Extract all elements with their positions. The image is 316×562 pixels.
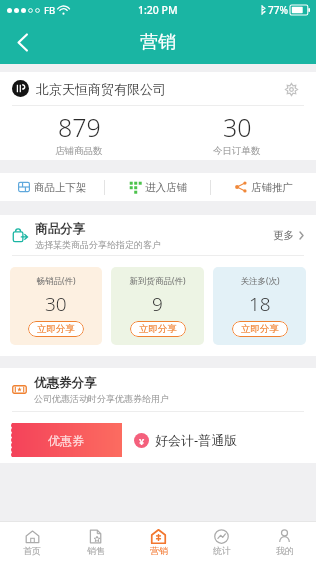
staticText: 统计 bbox=[213, 545, 231, 556]
staticText: 营销 bbox=[150, 545, 168, 556]
button[interactable]: Settings bbox=[278, 76, 304, 102]
button[interactable]: 新到货商品(件) bbox=[111, 267, 204, 345]
button[interactable]: 店铺推广 bbox=[211, 173, 316, 201]
staticText: 30 bbox=[45, 291, 67, 317]
staticText: 北京天恒商贸有限公司 bbox=[36, 81, 166, 97]
button[interactable]: 进入店铺 bbox=[105, 173, 210, 201]
button[interactable]: 30 bbox=[158, 106, 316, 160]
staticText: 879 bbox=[58, 110, 101, 144]
staticText: 30 bbox=[223, 110, 252, 144]
staticText: FB bbox=[44, 4, 56, 17]
button[interactable]: 我的 bbox=[253, 522, 316, 562]
staticText: 立即分享 bbox=[37, 323, 75, 335]
button[interactable]: 立即分享 bbox=[28, 321, 84, 337]
staticText: 销售 bbox=[87, 545, 105, 556]
button[interactable]: 879 bbox=[0, 106, 158, 160]
button[interactable]: Back bbox=[0, 20, 44, 64]
staticText: 我的 bbox=[276, 545, 294, 556]
button[interactable]: 关注多(次) bbox=[213, 267, 306, 345]
staticText: 畅销品(件) bbox=[36, 275, 76, 287]
staticText: 进入店铺 bbox=[145, 181, 187, 194]
staticText: 选择某类商品分享给指定的客户 bbox=[35, 239, 161, 250]
staticText: ¥ bbox=[139, 435, 145, 447]
button[interactable]: 立即分享 bbox=[232, 321, 288, 337]
staticText: 公司优惠活动时分享优惠券给用户 bbox=[34, 393, 169, 404]
staticText: 店铺商品数 bbox=[55, 145, 103, 157]
button[interactable]: 销售 bbox=[64, 522, 127, 562]
staticText: 优惠券 bbox=[48, 433, 84, 448]
staticText: 好会计-普通版 bbox=[155, 431, 238, 449]
staticText: 9 bbox=[152, 291, 163, 317]
staticText: 立即分享 bbox=[241, 323, 279, 335]
button[interactable]: 营销 bbox=[127, 522, 190, 562]
staticText: 首页 bbox=[23, 545, 41, 556]
staticText: 优惠券分享 bbox=[34, 375, 97, 391]
staticText: 店铺推广 bbox=[251, 181, 293, 194]
button[interactable]: 优惠券分享 bbox=[0, 368, 316, 411]
staticText: 商品分享 bbox=[35, 221, 85, 237]
button[interactable]: 畅销品(件) bbox=[10, 267, 102, 345]
button[interactable]: 商品分享 bbox=[0, 215, 316, 255]
button[interactable]: 优惠券 bbox=[10, 423, 306, 457]
staticText: 今日订单数 bbox=[213, 145, 261, 157]
staticText: 商品上下架 bbox=[34, 181, 87, 194]
staticText: 关注多(次) bbox=[240, 275, 280, 287]
staticText: 新到货商品(件) bbox=[129, 275, 186, 287]
staticText: 77% bbox=[268, 3, 288, 17]
button[interactable]: 立即分享 bbox=[130, 321, 186, 337]
staticText: 营销 bbox=[140, 31, 176, 54]
staticText: 18 bbox=[249, 291, 271, 317]
staticText: 1:20 PM bbox=[138, 3, 178, 17]
button[interactable]: 统计 bbox=[190, 522, 253, 562]
button[interactable]: 商品上下架 bbox=[0, 173, 104, 201]
staticText: 更多 bbox=[273, 229, 294, 242]
button[interactable]: 首页 bbox=[0, 522, 64, 562]
staticText: 立即分享 bbox=[139, 323, 177, 335]
